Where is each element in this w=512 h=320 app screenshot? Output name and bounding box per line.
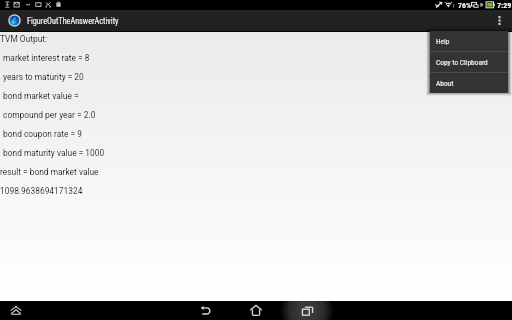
staticText: FigureOutTheAnswerActivity	[27, 16, 119, 26]
button[interactable]: Help	[430, 31, 508, 51]
staticText: Copy to Clipboard	[436, 58, 488, 67]
staticText: bond maturity value = 1000	[3, 148, 105, 158]
staticText: result = bond market value	[0, 167, 99, 177]
button[interactable]: App launcher	[2, 301, 30, 320]
button[interactable]: Back	[191, 301, 219, 320]
button[interactable]: Home	[242, 301, 270, 320]
staticText: compound per year = 2.0	[3, 110, 96, 120]
staticText: 7:29	[497, 1, 512, 10]
button[interactable]: More options	[488, 10, 510, 31]
button[interactable]: Copy to Clipboard	[430, 52, 508, 72]
staticText: Help	[436, 37, 450, 46]
staticText: 1098.9638694171324	[0, 186, 83, 196]
staticText: years to maturity = 20	[3, 72, 84, 82]
staticText: 76%	[458, 1, 471, 10]
staticText: bond market value =	[3, 91, 79, 101]
staticText: bond coupon rate = 9	[3, 129, 82, 139]
staticText: About	[436, 79, 454, 88]
staticText: TVM Output:	[0, 34, 48, 44]
button[interactable]: About	[430, 73, 508, 93]
staticText: market interest rate = 8	[3, 53, 90, 63]
button[interactable]: Recent apps	[293, 301, 321, 320]
